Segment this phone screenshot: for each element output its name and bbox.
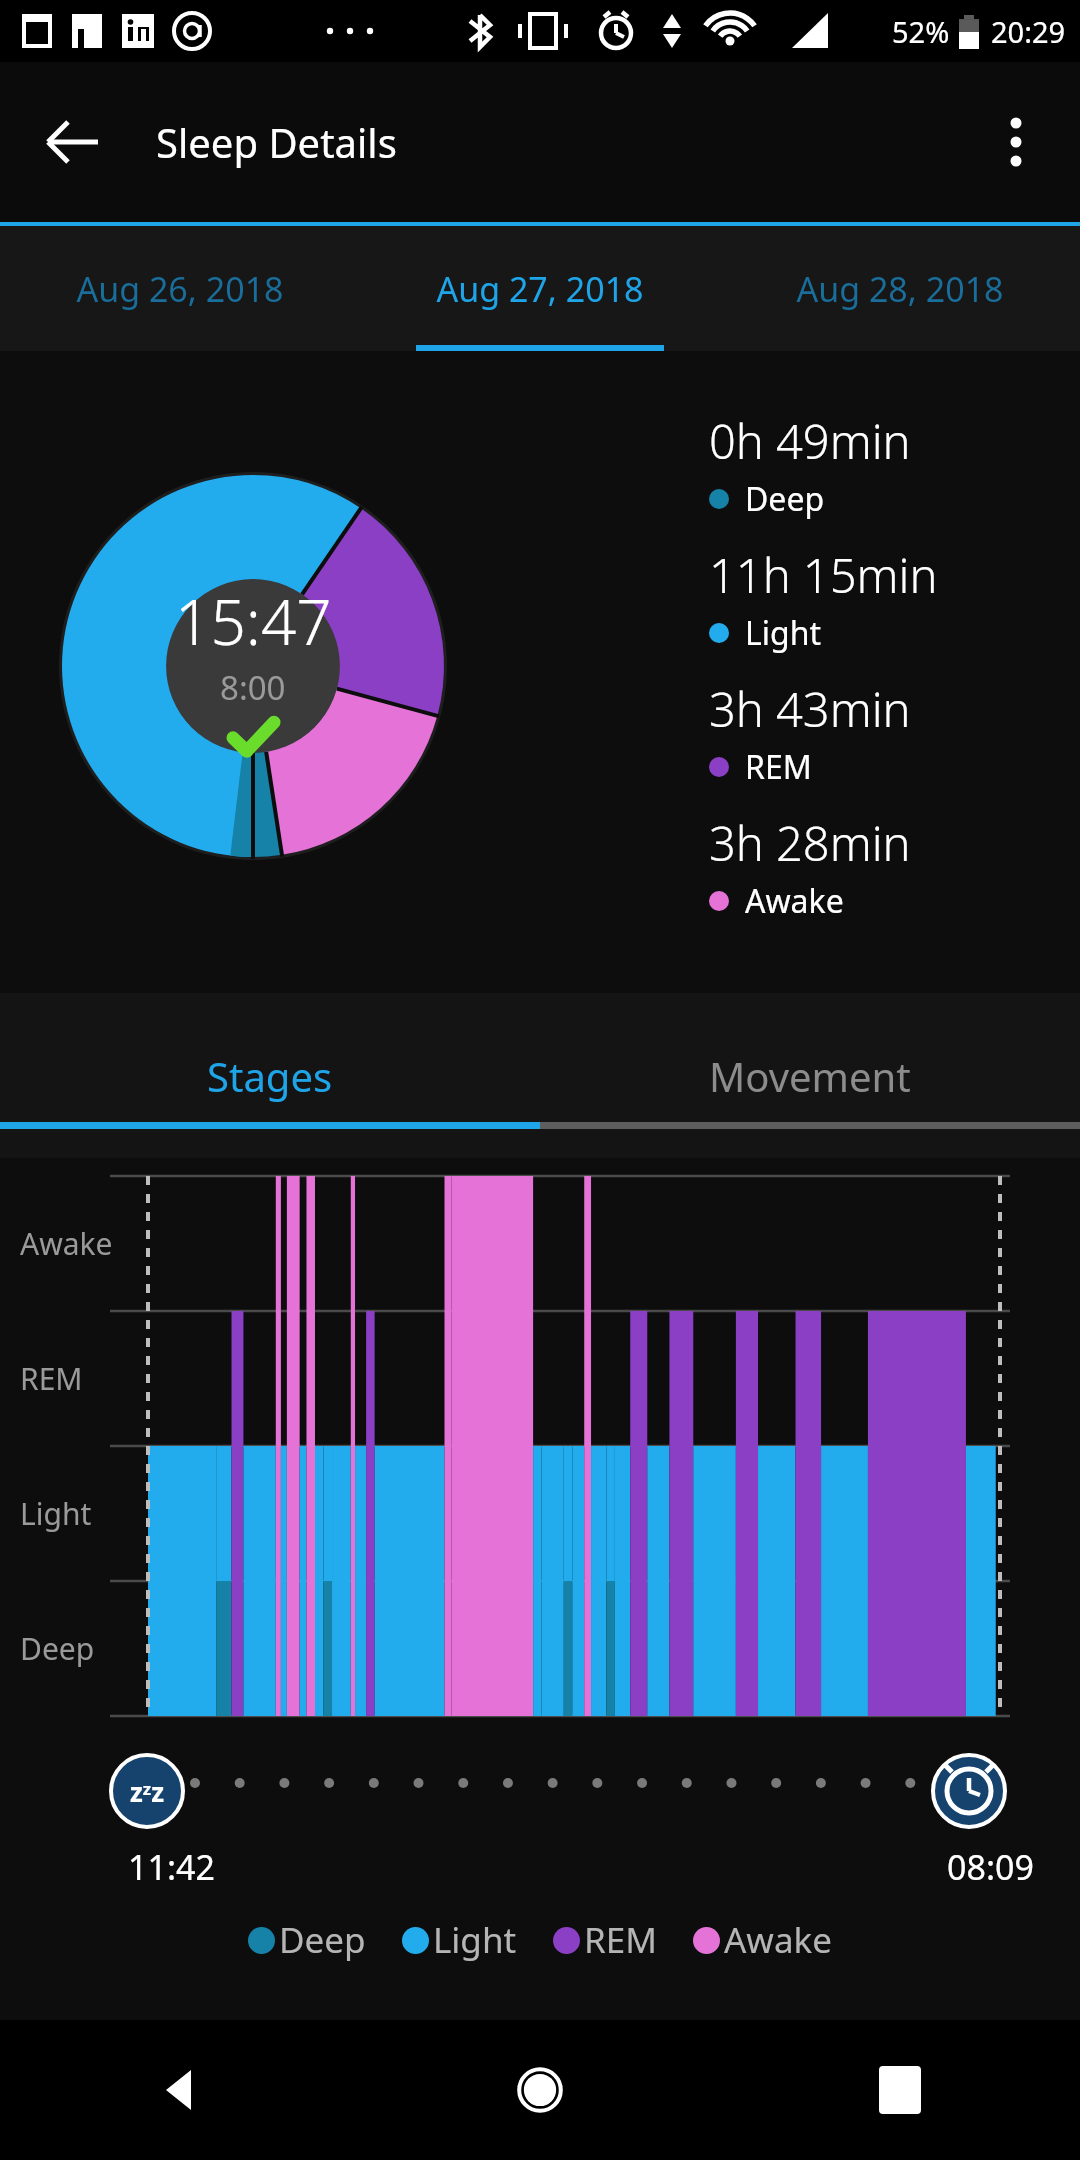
button[interactable]: Movement [540,993,1080,1158]
staticText: 08:09 [947,1844,1034,1890]
staticText: 3h 28min [709,811,911,875]
staticText: 52% [892,12,950,51]
staticText: Aug 28, 2018 [796,266,1004,312]
button[interactable]: Back [42,112,102,172]
staticText: Stages [207,1049,333,1103]
staticText: Deep [20,1628,95,1669]
staticText: Awake [20,1223,113,1264]
button[interactable]: Home [360,2020,720,2160]
button[interactable]: Recent apps [720,2020,1080,2160]
button[interactable]: Aug 27, 2018 [360,226,720,351]
staticText: 15:47 [175,579,332,663]
staticText: 11:42 [128,1844,215,1890]
button[interactable]: More options [988,114,1044,170]
staticText: 3h 43min [709,677,911,741]
staticText: 20:29 [991,12,1066,51]
staticText: REM [584,1916,657,1964]
staticText: Light [433,1916,517,1964]
button[interactable]: Alarm [930,1752,1008,1830]
staticText: Light [20,1493,92,1534]
button[interactable]: Aug 26, 2018 [0,226,360,351]
staticText: Sleep Details [156,115,397,169]
staticText: Awake [745,879,844,923]
button[interactable]: Sleep start [108,1752,186,1830]
staticText: REM [20,1358,83,1399]
staticText: 11h 15min [709,543,938,607]
staticText: Deep [279,1916,366,1964]
button[interactable]: Aug 28, 2018 [720,226,1080,351]
staticText: Aug 27, 2018 [436,266,644,312]
button[interactable]: Stages [0,993,540,1158]
staticText: Light [745,611,822,655]
staticText: zᶻz [130,1774,164,1809]
staticText: 0h 49min [709,409,911,473]
staticText: Awake [724,1916,832,1964]
button[interactable]: Back [0,2020,360,2160]
staticText: Movement [709,1049,911,1103]
staticText: 8:00 [220,665,286,710]
staticText: REM [745,745,812,789]
staticText: Aug 26, 2018 [76,266,284,312]
staticText: Deep [745,477,825,521]
